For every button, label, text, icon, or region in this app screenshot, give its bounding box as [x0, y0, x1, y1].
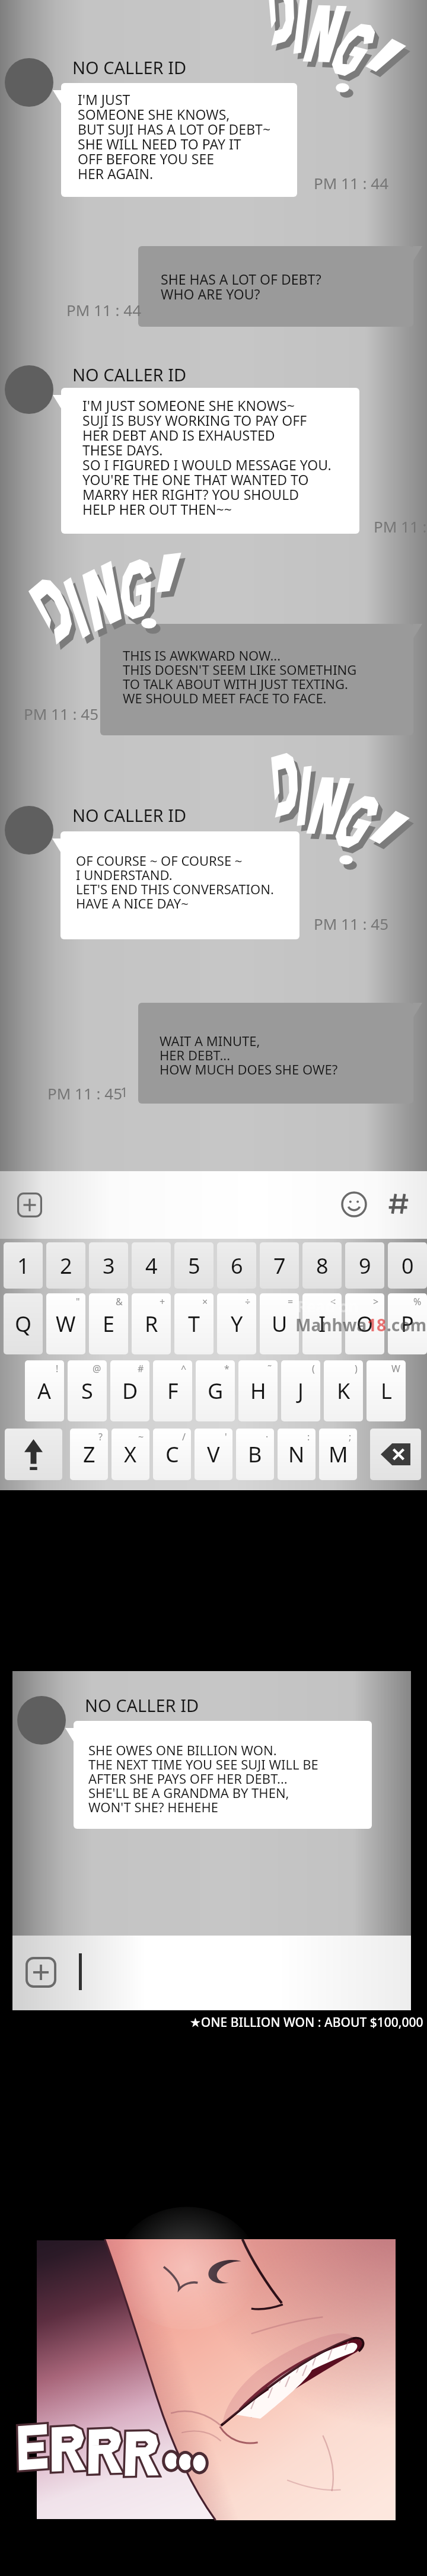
button[interactable]: 5 [174, 1242, 213, 1289]
staticText: Z [83, 1440, 95, 1469]
staticText: PM 11 : 4 [374, 516, 427, 537]
staticText: E [103, 1309, 115, 1338]
staticText: C [165, 1440, 179, 1469]
button[interactable]: E [89, 1293, 128, 1354]
button[interactable] [100, 624, 413, 735]
button[interactable]: B [236, 1429, 274, 1480]
button[interactable]: R [132, 1293, 171, 1354]
staticText: P [401, 1309, 414, 1338]
staticText: F [167, 1376, 179, 1405]
staticText: Y [231, 1309, 243, 1338]
button[interactable]: J [281, 1360, 320, 1421]
button[interactable]: L [367, 1360, 406, 1421]
staticText: 1 [17, 1251, 30, 1280]
button[interactable]: Q [4, 1293, 43, 1354]
button[interactable]: C [153, 1429, 191, 1480]
staticText: / [182, 1430, 186, 1443]
staticText: 3 [103, 1251, 115, 1280]
staticText: W [56, 1309, 76, 1338]
staticText: Manhwa [295, 1313, 367, 1336]
staticText: ÷ [245, 1295, 251, 1308]
staticText: A [37, 1376, 52, 1405]
staticText: PM 11 : 45 [47, 1083, 123, 1104]
staticText: H [250, 1376, 266, 1405]
staticText: 1 [120, 1083, 128, 1101]
staticText: 0 [401, 1251, 414, 1280]
button[interactable] [60, 831, 299, 939]
button[interactable]: 6 [217, 1242, 256, 1289]
button[interactable]: W [46, 1293, 85, 1354]
button[interactable]: U [260, 1293, 299, 1354]
button[interactable]: O [345, 1293, 384, 1354]
staticText: L [381, 1376, 392, 1405]
staticText: G [208, 1376, 224, 1405]
button[interactable]: V [195, 1429, 232, 1480]
button[interactable]: A [25, 1360, 64, 1421]
staticText: 6 [231, 1251, 243, 1280]
button[interactable]: 0 [388, 1242, 427, 1289]
staticText: W [391, 1362, 400, 1375]
other: Attach [17, 1193, 42, 1217]
button[interactable]: 9 [345, 1242, 384, 1289]
staticText: I'M JUST SOMEONE SHE KNOWS~ SUJI IS BUSY… [82, 396, 332, 519]
staticText: SHE OWES ONE BILLION WON. THE NEXT TIME … [88, 1741, 318, 1816]
staticText: ! [56, 1362, 59, 1375]
button[interactable]: 3 [89, 1242, 128, 1289]
staticText: PM 11 : 45 [314, 913, 389, 934]
button[interactable]: 4 [132, 1242, 171, 1289]
button[interactable]: K [324, 1360, 363, 1421]
button[interactable] [61, 388, 359, 534]
staticText: @ [93, 1362, 101, 1375]
button[interactable]: I [302, 1293, 342, 1354]
button[interactable] [138, 1003, 413, 1104]
staticText: < [330, 1295, 336, 1308]
staticText: THIS IS AWKWARD NOW... THIS DOESN'T SEEM… [123, 646, 357, 707]
button[interactable] [138, 246, 413, 327]
staticText: M [329, 1440, 348, 1469]
button[interactable] [61, 83, 297, 197]
button[interactable]: 7 [260, 1242, 299, 1289]
other: Hashtag [387, 1191, 413, 1217]
staticText: ) [355, 1362, 358, 1375]
staticText: Q [15, 1309, 32, 1338]
other: Attach [26, 1957, 56, 1988]
staticText: 9 [359, 1251, 371, 1280]
staticText: PM 11 : 44 [314, 173, 389, 193]
other: Emoji [341, 1191, 367, 1217]
button[interactable]: M [319, 1429, 357, 1480]
button[interactable]: Y [217, 1293, 256, 1354]
button[interactable]: Attach [0, 1171, 427, 1239]
button[interactable]: N [278, 1429, 316, 1480]
staticText: : [307, 1430, 310, 1443]
staticText: 7 [273, 1251, 286, 1280]
button[interactable]: D [110, 1360, 149, 1421]
button[interactable] [74, 1721, 372, 1829]
staticText: 18 [367, 1313, 387, 1336]
button[interactable]: X [111, 1429, 149, 1480]
staticText: O [356, 1309, 374, 1338]
button[interactable]: 2 [46, 1242, 85, 1289]
button[interactable]: P [388, 1293, 427, 1354]
button[interactable]: S [68, 1360, 107, 1421]
staticText: ~ [138, 1430, 144, 1443]
staticText: SHE HAS A LOT OF DEBT? WHO ARE YOU? [161, 270, 321, 304]
button[interactable]: H [238, 1360, 278, 1421]
button[interactable]: 1 [4, 1242, 43, 1289]
staticText: PM 11 : 45 [24, 703, 99, 724]
staticText: B [248, 1440, 262, 1469]
button[interactable]: T [174, 1293, 213, 1354]
button[interactable]: Shift [5, 1429, 62, 1480]
button[interactable]: 8 [302, 1242, 342, 1289]
staticText: ★ONE BILLION WON : ABOUT $100,000 [190, 2014, 423, 2031]
staticText: WAIT A MINUTE, HER DEBT... HOW MUCH DOES… [160, 1032, 338, 1079]
staticText: * [224, 1362, 230, 1375]
button[interactable]: G [196, 1360, 235, 1421]
staticText: · [266, 1430, 269, 1443]
button[interactable]: Backspace [370, 1429, 421, 1480]
staticText: I [318, 1309, 326, 1338]
button[interactable]: Z [70, 1429, 108, 1480]
staticText: K [337, 1376, 350, 1405]
staticText: > [373, 1295, 379, 1308]
button[interactable]: F [153, 1360, 192, 1421]
staticText: & [116, 1295, 123, 1308]
